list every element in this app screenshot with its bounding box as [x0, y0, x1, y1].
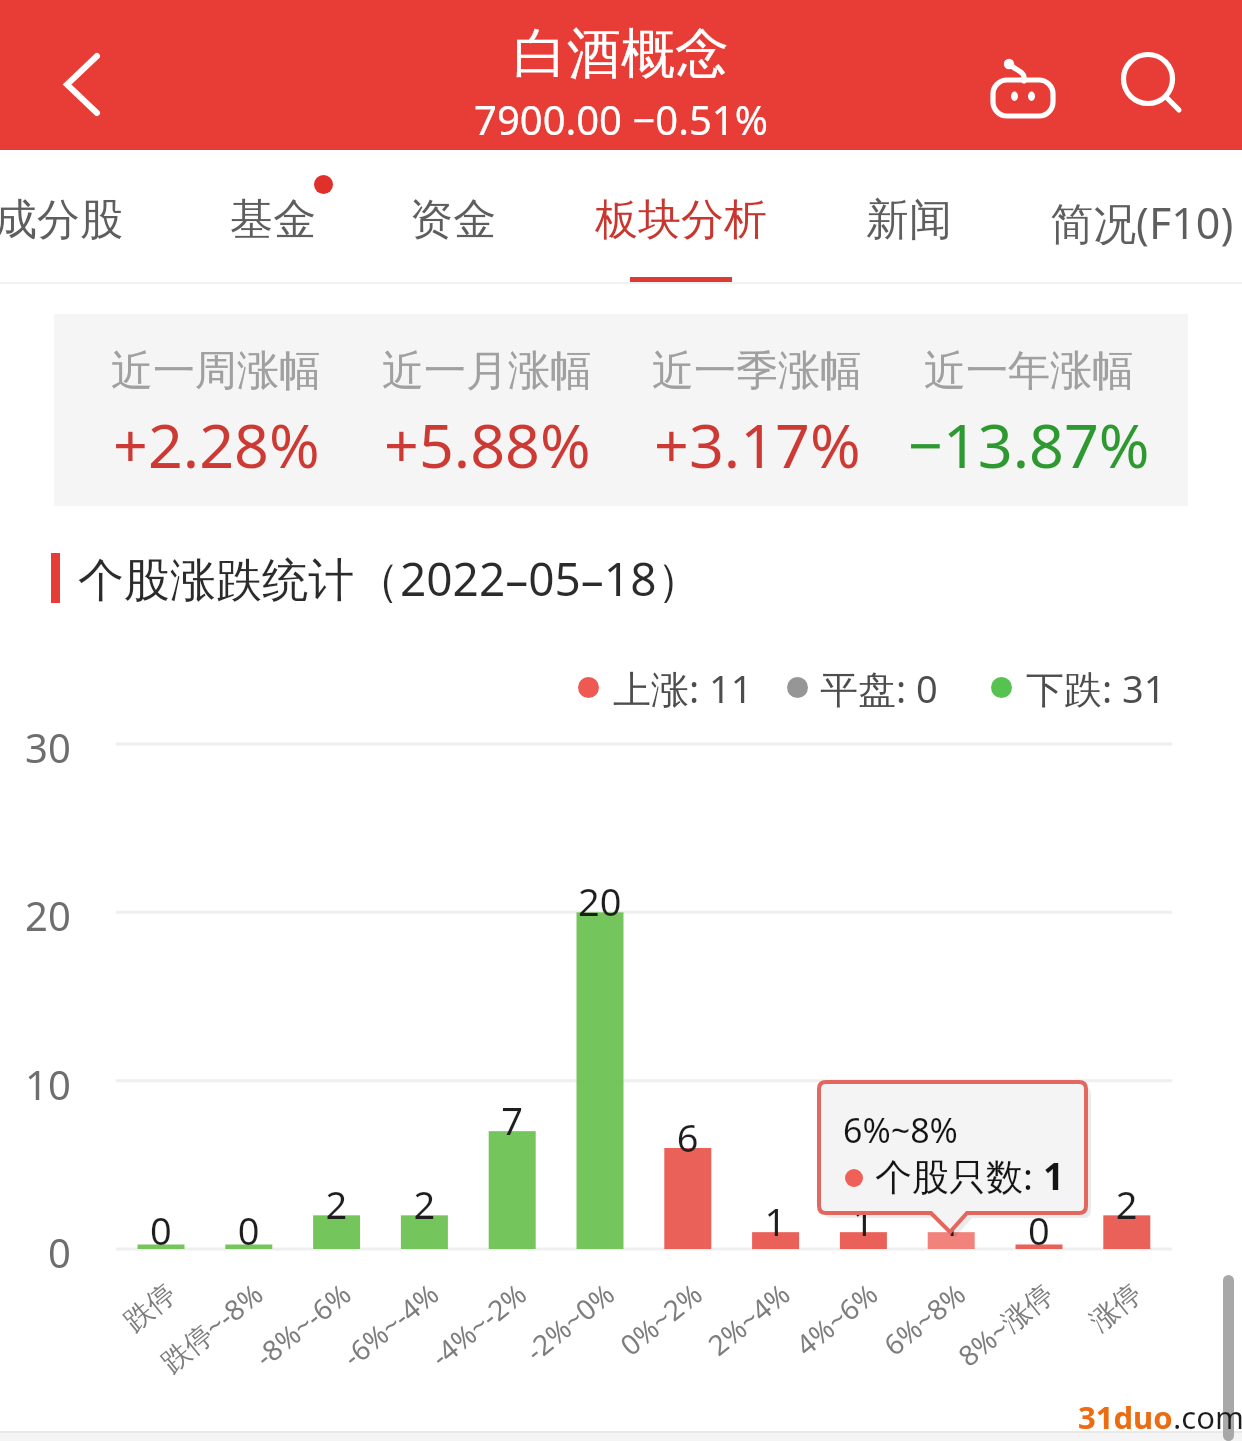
staticText: −13.87%	[908, 403, 1150, 486]
staticText: 基金	[230, 193, 316, 247]
staticText: 平盘: 0	[820, 662, 938, 710]
button[interactable]: 成分股	[0, 150, 163, 284]
button[interactable]: Back	[32, 35, 132, 135]
staticText: 成分股	[0, 193, 123, 247]
staticText: 资金	[410, 193, 496, 247]
button[interactable]: 简况(F10)	[1022, 150, 1242, 284]
staticText: 近一周涨幅	[111, 345, 321, 398]
button[interactable]: 新闻	[817, 150, 1001, 284]
staticText: +3.17%	[654, 403, 861, 486]
staticText: 板块分析	[595, 193, 767, 247]
staticText: +2.28%	[113, 403, 320, 486]
staticText: 31duo	[1078, 1396, 1173, 1438]
staticText: 简况(F10)	[1050, 193, 1234, 252]
button[interactable]: 基金	[181, 150, 365, 284]
staticText: 个股涨跌统计（2022–05–18）	[78, 547, 703, 603]
staticText: 近一季涨幅	[652, 345, 862, 398]
staticText: 新闻	[866, 193, 952, 247]
staticText: .com	[1173, 1396, 1242, 1438]
staticText: 7900.00 −0.51%	[474, 92, 768, 146]
staticText: 上涨: 11	[613, 662, 753, 710]
staticText: +5.88%	[384, 403, 591, 486]
staticText: 近一年涨幅	[924, 345, 1134, 398]
button[interactable]: Search	[1097, 28, 1207, 138]
staticText: 近一月涨幅	[382, 345, 592, 398]
staticText: 白酒概念	[513, 20, 729, 88]
button[interactable]: Robot assistant	[968, 33, 1078, 143]
staticText: 下跌: 31	[1026, 662, 1166, 710]
button[interactable]: 板块分析	[563, 150, 799, 284]
button[interactable]: 资金	[361, 150, 545, 284]
